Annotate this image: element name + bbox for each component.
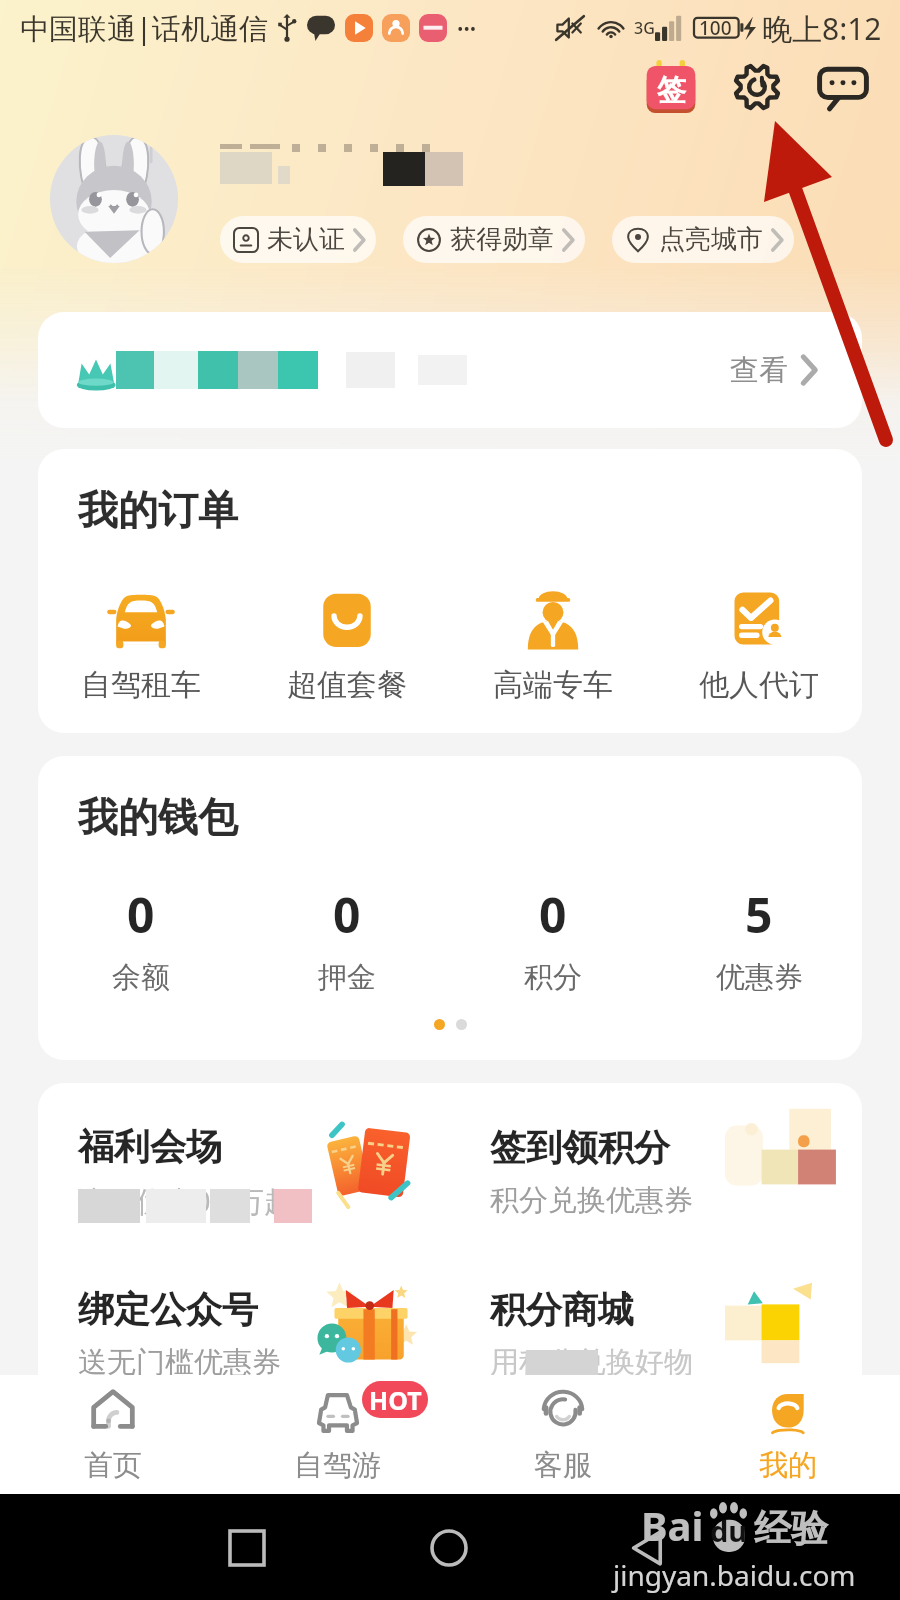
staticText: 我的 (759, 1447, 817, 1484)
staticText: du (710, 1511, 748, 1550)
button[interactable]: 客服 (450, 1375, 675, 1494)
button[interactable]: 0 (38, 882, 244, 996)
button[interactable]: 未认证 (220, 216, 376, 263)
staticText: 点亮城市 (659, 223, 763, 256)
button[interactable]: 我的 (675, 1375, 900, 1494)
staticText: HOT (369, 1383, 422, 1417)
button[interactable]: 首页 (0, 1375, 225, 1494)
staticText: 获得勋章 (450, 223, 554, 256)
button[interactable]: Recents (230, 1531, 264, 1565)
staticText: 签到领积分 (490, 1125, 670, 1170)
staticText: 积分兑换优惠券 (490, 1182, 693, 1219)
button[interactable]: 查看 (38, 312, 862, 428)
button[interactable]: 高端专车 (450, 584, 656, 710)
button[interactable]: 积分商城 (450, 1253, 862, 1415)
staticText: 签 (657, 72, 686, 109)
staticText: 自驾游 (294, 1447, 381, 1484)
staticText: 首页 (84, 1447, 142, 1484)
button[interactable]: 5 (656, 882, 862, 996)
staticText: 0 (127, 882, 155, 947)
button[interactable]: 福利会场 (38, 1091, 450, 1253)
button[interactable]: 设置 (726, 56, 788, 118)
staticText: 中国联通|话机通信 (20, 8, 268, 48)
staticText: 查看 (730, 352, 788, 389)
staticText: 超值套餐 (287, 666, 407, 704)
button[interactable]: Home (430, 1529, 468, 1567)
staticText: 0 (539, 882, 567, 947)
button[interactable]: 点亮城市 (612, 216, 794, 263)
staticText: Bai (641, 1498, 704, 1552)
button[interactable]: 获得勋章 (403, 216, 585, 263)
button[interactable]: 0 (244, 882, 450, 996)
staticText: 我的订单 (78, 485, 238, 535)
staticText: 他人代订 (699, 666, 819, 704)
staticText: jingyan.baidu.com (613, 1556, 856, 1594)
staticText: 5 (745, 882, 773, 947)
staticText: ••• (457, 17, 477, 40)
staticText: 送无门槛优惠券 (78, 1344, 281, 1381)
staticText: 押金 (318, 959, 376, 996)
button[interactable]: 超值套餐 (244, 584, 450, 710)
staticText: 未认证 (267, 223, 345, 256)
staticText: 该周优惠0.1万起 (78, 1181, 293, 1221)
button[interactable]: 签到 (640, 56, 702, 118)
staticText: 优惠券 (716, 959, 803, 996)
button[interactable]: 签到领积分 (450, 1091, 862, 1253)
button[interactable]: 绑定公众号 (38, 1253, 450, 1415)
staticText: 经验 (754, 1505, 828, 1552)
staticText: 晚上8:12 (762, 8, 882, 49)
button[interactable]: 自驾租车 (38, 584, 244, 710)
staticText: 高端专车 (493, 666, 613, 704)
staticText: 积分商城 (490, 1287, 634, 1332)
button[interactable]: 0 (450, 882, 656, 996)
staticText: 客服 (534, 1447, 592, 1484)
button[interactable]: 头像 (50, 135, 178, 263)
staticText: 福利会场 (78, 1124, 222, 1169)
staticText: 3G (634, 17, 655, 39)
staticText: 我的钱包 (78, 792, 238, 842)
staticText: 用积分兑换好物 (490, 1344, 693, 1381)
staticText: 积分 (524, 959, 582, 996)
button[interactable]: 消息 (812, 56, 874, 118)
staticText: 0 (333, 882, 361, 947)
button[interactable]: Back (630, 1530, 666, 1566)
button[interactable]: HOT (225, 1375, 450, 1494)
staticText: 100 (699, 15, 732, 41)
staticText: 自驾租车 (81, 666, 201, 704)
staticText: 余额 (112, 959, 170, 996)
button[interactable]: 他人代订 (656, 584, 862, 710)
staticText: 绑定公众号 (78, 1287, 258, 1332)
